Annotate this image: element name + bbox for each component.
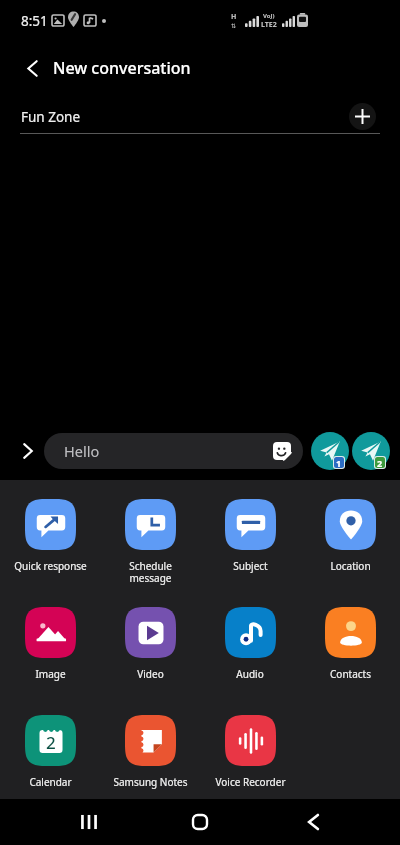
button[interactable]: Stickers (270, 439, 294, 463)
staticText: 1 (336, 457, 342, 468)
button[interactable]: Subject (200, 499, 300, 591)
staticText: ⇅ (231, 22, 237, 29)
button[interactable]: Quick response (0, 499, 100, 591)
staticText: Voice Recorder (215, 775, 286, 789)
staticText: Subject (233, 559, 268, 573)
staticText: Schedule message (129, 559, 172, 585)
staticText: H (231, 12, 237, 22)
staticText: Contacts (330, 667, 371, 681)
staticText: Calendar (29, 775, 72, 789)
staticText: VoJ) (263, 12, 275, 20)
button[interactable]: Send with SIM 2 (352, 432, 390, 470)
staticText: Samsung Notes (113, 775, 188, 789)
button[interactable]: Image (0, 607, 100, 699)
button[interactable]: Add recipient (344, 98, 380, 134)
button[interactable]: Samsung Notes (100, 715, 200, 807)
button[interactable]: Video (100, 607, 200, 699)
button[interactable]: Show more options (8, 431, 48, 471)
button[interactable]: Send with SIM 1 (311, 432, 349, 470)
staticText: New conversation (53, 57, 191, 79)
staticText: Audio (236, 667, 264, 681)
staticText: Hello (64, 441, 100, 461)
staticText: Quick response (14, 559, 87, 573)
staticText: 2 (46, 731, 56, 754)
button[interactable]: Location (300, 499, 400, 591)
button[interactable]: Schedule message (100, 499, 200, 591)
button[interactable]: Navigate up (10, 46, 54, 90)
staticText: Fun Zone (21, 108, 81, 126)
button[interactable]: Hello (44, 433, 303, 469)
button[interactable]: Recent apps (59, 799, 119, 845)
button[interactable]: Voice Recorder (200, 715, 300, 807)
button[interactable]: Home (170, 799, 230, 845)
button[interactable]: Back (283, 799, 343, 845)
button[interactable]: Audio (200, 607, 300, 699)
staticText: Image (35, 667, 66, 681)
button[interactable]: Contacts (300, 607, 400, 699)
staticText: 8:51 (21, 12, 48, 30)
button[interactable]: 2 (0, 715, 100, 807)
staticText: Location (330, 559, 371, 573)
staticText: Video (137, 667, 164, 681)
staticText: 2 (377, 457, 383, 468)
staticText: LTE2 (261, 20, 277, 30)
